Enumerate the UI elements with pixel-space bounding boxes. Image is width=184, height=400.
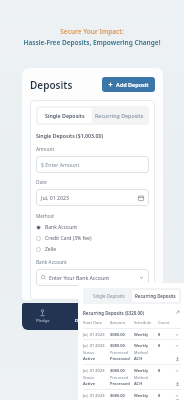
staticText: $080.00 (110, 393, 134, 398)
button[interactable]: Export (174, 309, 181, 316)
staticText: Bank Account (45, 224, 78, 231)
staticText: $080.00 (110, 343, 134, 348)
staticText: Schedule (134, 320, 158, 325)
staticText: Secure Your Impact: (8, 27, 176, 36)
staticText: Hassle-Free Deposits, Empowering Change! (8, 38, 176, 47)
staticText: Method (134, 375, 158, 380)
staticText: Amount (36, 146, 55, 153)
staticText: 8 (158, 368, 173, 373)
staticText: Weekly (134, 393, 158, 398)
staticText: Start Date (83, 320, 110, 325)
staticText: ACH (134, 356, 158, 361)
staticText: Jul, 01 2023 (83, 332, 110, 337)
staticText: Amount (110, 320, 134, 325)
staticText: ACH (134, 381, 158, 386)
button[interactable]: Jul, 01 2023 (83, 329, 181, 340)
staticText: 8 (158, 343, 173, 348)
staticText: $080.00 (110, 332, 134, 337)
staticText: Weekly (134, 368, 158, 373)
staticText: Pledge (36, 318, 50, 324)
staticText: Method (36, 213, 54, 220)
button[interactable]: Jul, 01 2023 (83, 365, 181, 390)
staticText: Recurring Deposits (135, 293, 176, 299)
staticText: Weekly (134, 343, 158, 348)
staticText: Single Deposits (45, 112, 85, 119)
button[interactable]: Jul, 01 2023 (83, 340, 181, 365)
staticText: $ Enter Amount (41, 161, 80, 168)
staticText: Recurring Deposits (95, 112, 144, 119)
button[interactable]: Deposits (63, 303, 104, 330)
staticText: Jul, 01 2023 (83, 393, 110, 398)
button[interactable]: Add Deposit (102, 77, 155, 92)
staticText: Bank Account (36, 259, 67, 266)
staticText: Single Deposits ($1,003.00) (36, 132, 104, 139)
button[interactable]: Recurring Deposits (92, 108, 147, 123)
staticText: Jul, 01 2023 (41, 194, 69, 201)
staticText: Active (83, 381, 110, 386)
staticText: Processed (110, 356, 134, 361)
button[interactable]: Recurring Deposits (132, 290, 179, 302)
staticText: Deposits (30, 78, 73, 92)
staticText: Status (83, 350, 110, 355)
staticText: Weekly (134, 332, 158, 337)
staticText: Enter Your Bank Account (49, 274, 110, 281)
staticText: Status (83, 375, 110, 380)
button[interactable]: Zelle (36, 246, 149, 253)
button[interactable]: $ Enter Amount (36, 156, 149, 173)
staticText: Deposits (75, 318, 93, 324)
staticText: Processed (110, 375, 134, 380)
button[interactable]: Jul, 01 2023 (36, 189, 149, 206)
button[interactable]: Bank Account (36, 224, 149, 231)
button[interactable]: Credit Card (3% fee) (36, 235, 149, 242)
staticText: $080.00 (110, 368, 134, 373)
staticText: Jul, 01 2023 (83, 343, 110, 348)
staticText: Active (83, 356, 110, 361)
staticText: 8 (158, 332, 173, 337)
button[interactable]: Single Deposits (38, 108, 92, 123)
staticText: Zelle (45, 246, 57, 253)
button[interactable]: Enter Your Bank Account (36, 269, 149, 286)
staticText: Processed (110, 350, 134, 355)
staticText: Add Deposit (116, 81, 149, 88)
staticText: Credit Card (3% fee) (45, 235, 92, 242)
staticText: Recurring Deposits ($320.00) (83, 310, 145, 316)
staticText: Jul, 01 2023 (83, 368, 110, 373)
staticText: Method (134, 350, 158, 355)
button[interactable]: Jul, 01 2023 (83, 390, 181, 400)
staticText: Date (36, 179, 47, 186)
staticText: Processed (110, 381, 134, 386)
staticText: Count (158, 320, 173, 325)
staticText: 8 (158, 393, 173, 398)
button[interactable]: Pledge (22, 303, 63, 330)
staticText: Single Deposits (93, 293, 125, 299)
button[interactable]: Single Deposits (85, 290, 132, 302)
